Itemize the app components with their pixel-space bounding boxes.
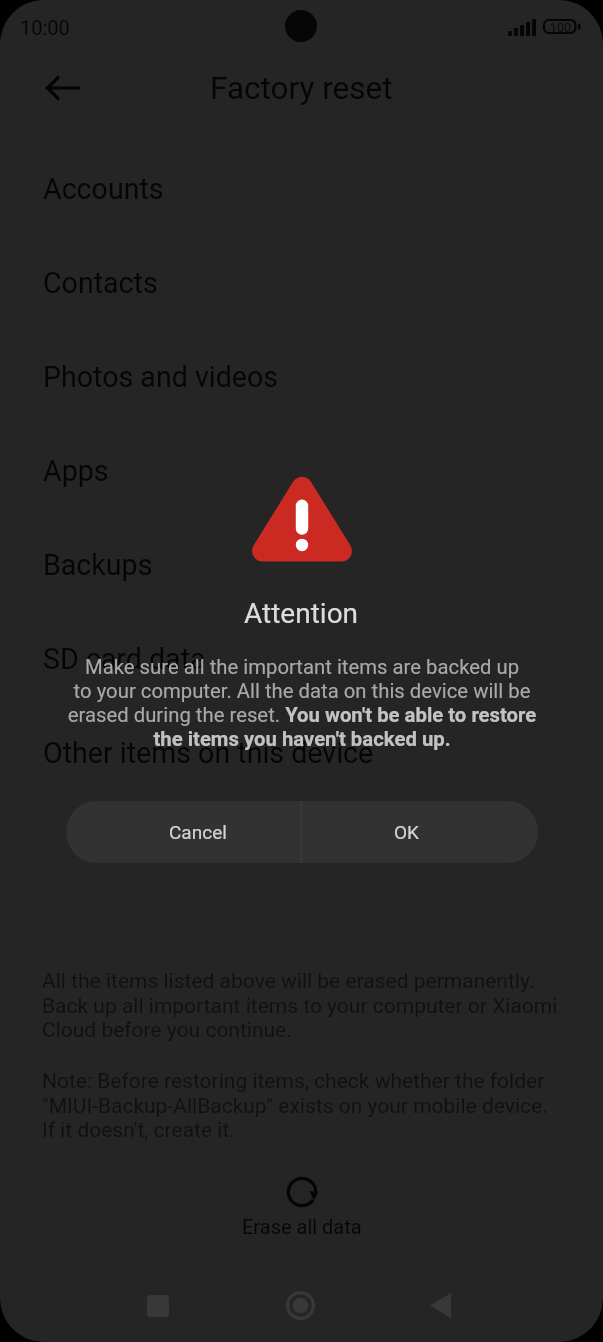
staticText: 10:00 xyxy=(20,16,70,39)
staticText: Attention xyxy=(244,597,359,630)
staticText: OK xyxy=(394,821,419,843)
button[interactable]: Home xyxy=(272,1277,329,1334)
button[interactable]: OK xyxy=(302,801,538,863)
staticText: Cancel xyxy=(169,821,227,843)
button[interactable]: SD card data xyxy=(0,612,603,706)
button[interactable]: Cancel xyxy=(66,801,301,863)
button[interactable]: Contacts xyxy=(0,236,603,330)
button[interactable]: Backups xyxy=(0,518,603,612)
button[interactable]: Back xyxy=(412,1277,469,1334)
staticText: Photos and videos xyxy=(43,360,279,394)
staticText: Apps xyxy=(43,454,109,488)
staticText: All the items listed above will be erase… xyxy=(42,969,558,1042)
staticText: Other items on this device xyxy=(43,736,374,770)
staticText: Accounts xyxy=(43,172,164,206)
button[interactable]: Accounts xyxy=(0,142,603,236)
button[interactable]: Back xyxy=(38,50,603,128)
staticText: Factory reset xyxy=(210,70,393,107)
button[interactable]: Other items on this device xyxy=(0,706,603,800)
staticText: Contacts xyxy=(43,266,158,300)
button[interactable]: Apps xyxy=(0,424,603,518)
button[interactable]: Recent apps xyxy=(129,1277,186,1334)
staticText: 100 xyxy=(550,20,572,35)
button[interactable]: Photos and videos xyxy=(0,330,603,424)
button[interactable]: Erase all data xyxy=(242,1175,362,1238)
staticText: Erase all data xyxy=(242,1215,362,1238)
staticText: Make sure all the important items are ba… xyxy=(42,655,562,751)
staticText: SD card data xyxy=(43,642,206,676)
staticText: Note: Before restoring items, check whet… xyxy=(42,1069,548,1142)
staticText: Backups xyxy=(43,548,153,582)
